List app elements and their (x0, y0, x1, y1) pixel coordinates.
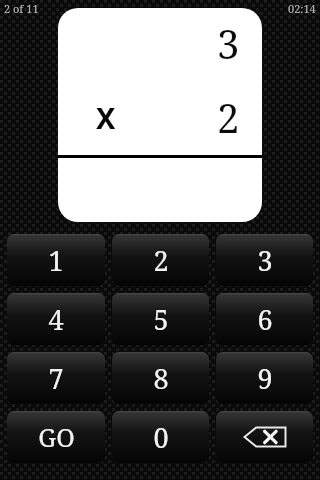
staticText: X (96, 98, 116, 137)
staticText: 3 (217, 16, 240, 70)
staticText: 2 of 11 (4, 1, 39, 16)
button[interactable]: 0 (112, 411, 209, 463)
staticText: 9 (257, 360, 273, 397)
button[interactable]: Backspace (216, 411, 313, 463)
button[interactable]: 1 (7, 234, 105, 286)
staticText: 1 (48, 242, 64, 279)
button[interactable]: 8 (112, 352, 209, 404)
staticText: 8 (153, 360, 169, 397)
staticText: 2 (153, 242, 169, 279)
button[interactable]: 3 (58, 8, 262, 222)
staticText: 4 (48, 301, 64, 338)
staticText: 3 (257, 242, 273, 279)
button[interactable]: 3 (216, 234, 313, 286)
button[interactable]: 7 (7, 352, 105, 404)
button[interactable]: GO (7, 411, 105, 463)
button[interactable]: 4 (7, 293, 105, 345)
staticText: 7 (48, 360, 64, 397)
staticText: 6 (257, 301, 273, 338)
staticText: 0 (153, 419, 169, 456)
staticText: 02:14 (288, 1, 316, 16)
button[interactable]: 2 (112, 234, 209, 286)
staticText: GO (38, 420, 75, 454)
button[interactable]: 9 (216, 352, 313, 404)
button[interactable]: 6 (216, 293, 313, 345)
staticText: 5 (153, 301, 169, 338)
staticText: 2 (217, 90, 240, 144)
button[interactable]: 5 (112, 293, 209, 345)
